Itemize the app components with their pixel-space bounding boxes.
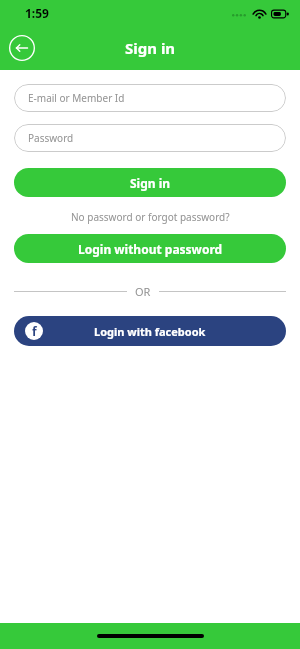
staticText: 1:59 [25, 5, 49, 21]
staticText: Sign in [125, 38, 176, 58]
button[interactable]: Login without password [14, 234, 286, 263]
staticText: Login with facebook [94, 324, 206, 339]
button[interactable]: Login with facebook [14, 316, 286, 346]
button[interactable]: E-mail or Member Id [14, 84, 286, 112]
button[interactable]: Back [8, 34, 36, 62]
staticText: No password or forgot password? [71, 210, 230, 224]
button[interactable]: Password [14, 124, 286, 152]
staticText: f [32, 323, 37, 339]
staticText: Login without password [78, 241, 223, 257]
staticText: OR [135, 284, 151, 299]
button[interactable]: Sign in [14, 168, 286, 197]
staticText: Sign in [130, 175, 171, 191]
staticText: Password [28, 131, 74, 145]
button[interactable]: No password or forgot password? [14, 208, 286, 226]
staticText: E-mail or Member Id [28, 91, 125, 105]
